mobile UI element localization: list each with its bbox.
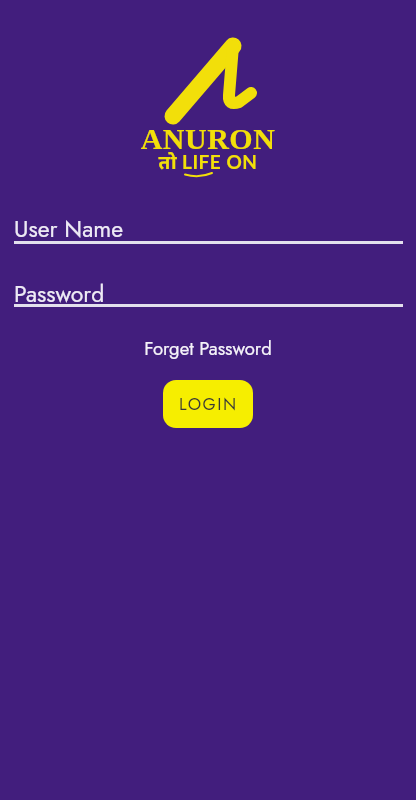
staticText: ANURON: [0, 122, 416, 155]
staticText: Forget Password: [0, 335, 416, 362]
staticText: User Name: [14, 212, 123, 245]
staticText: तो LIFE ON: [0, 149, 416, 175]
staticText: Password: [14, 277, 105, 310]
staticText: LOGIN: [179, 392, 238, 417]
